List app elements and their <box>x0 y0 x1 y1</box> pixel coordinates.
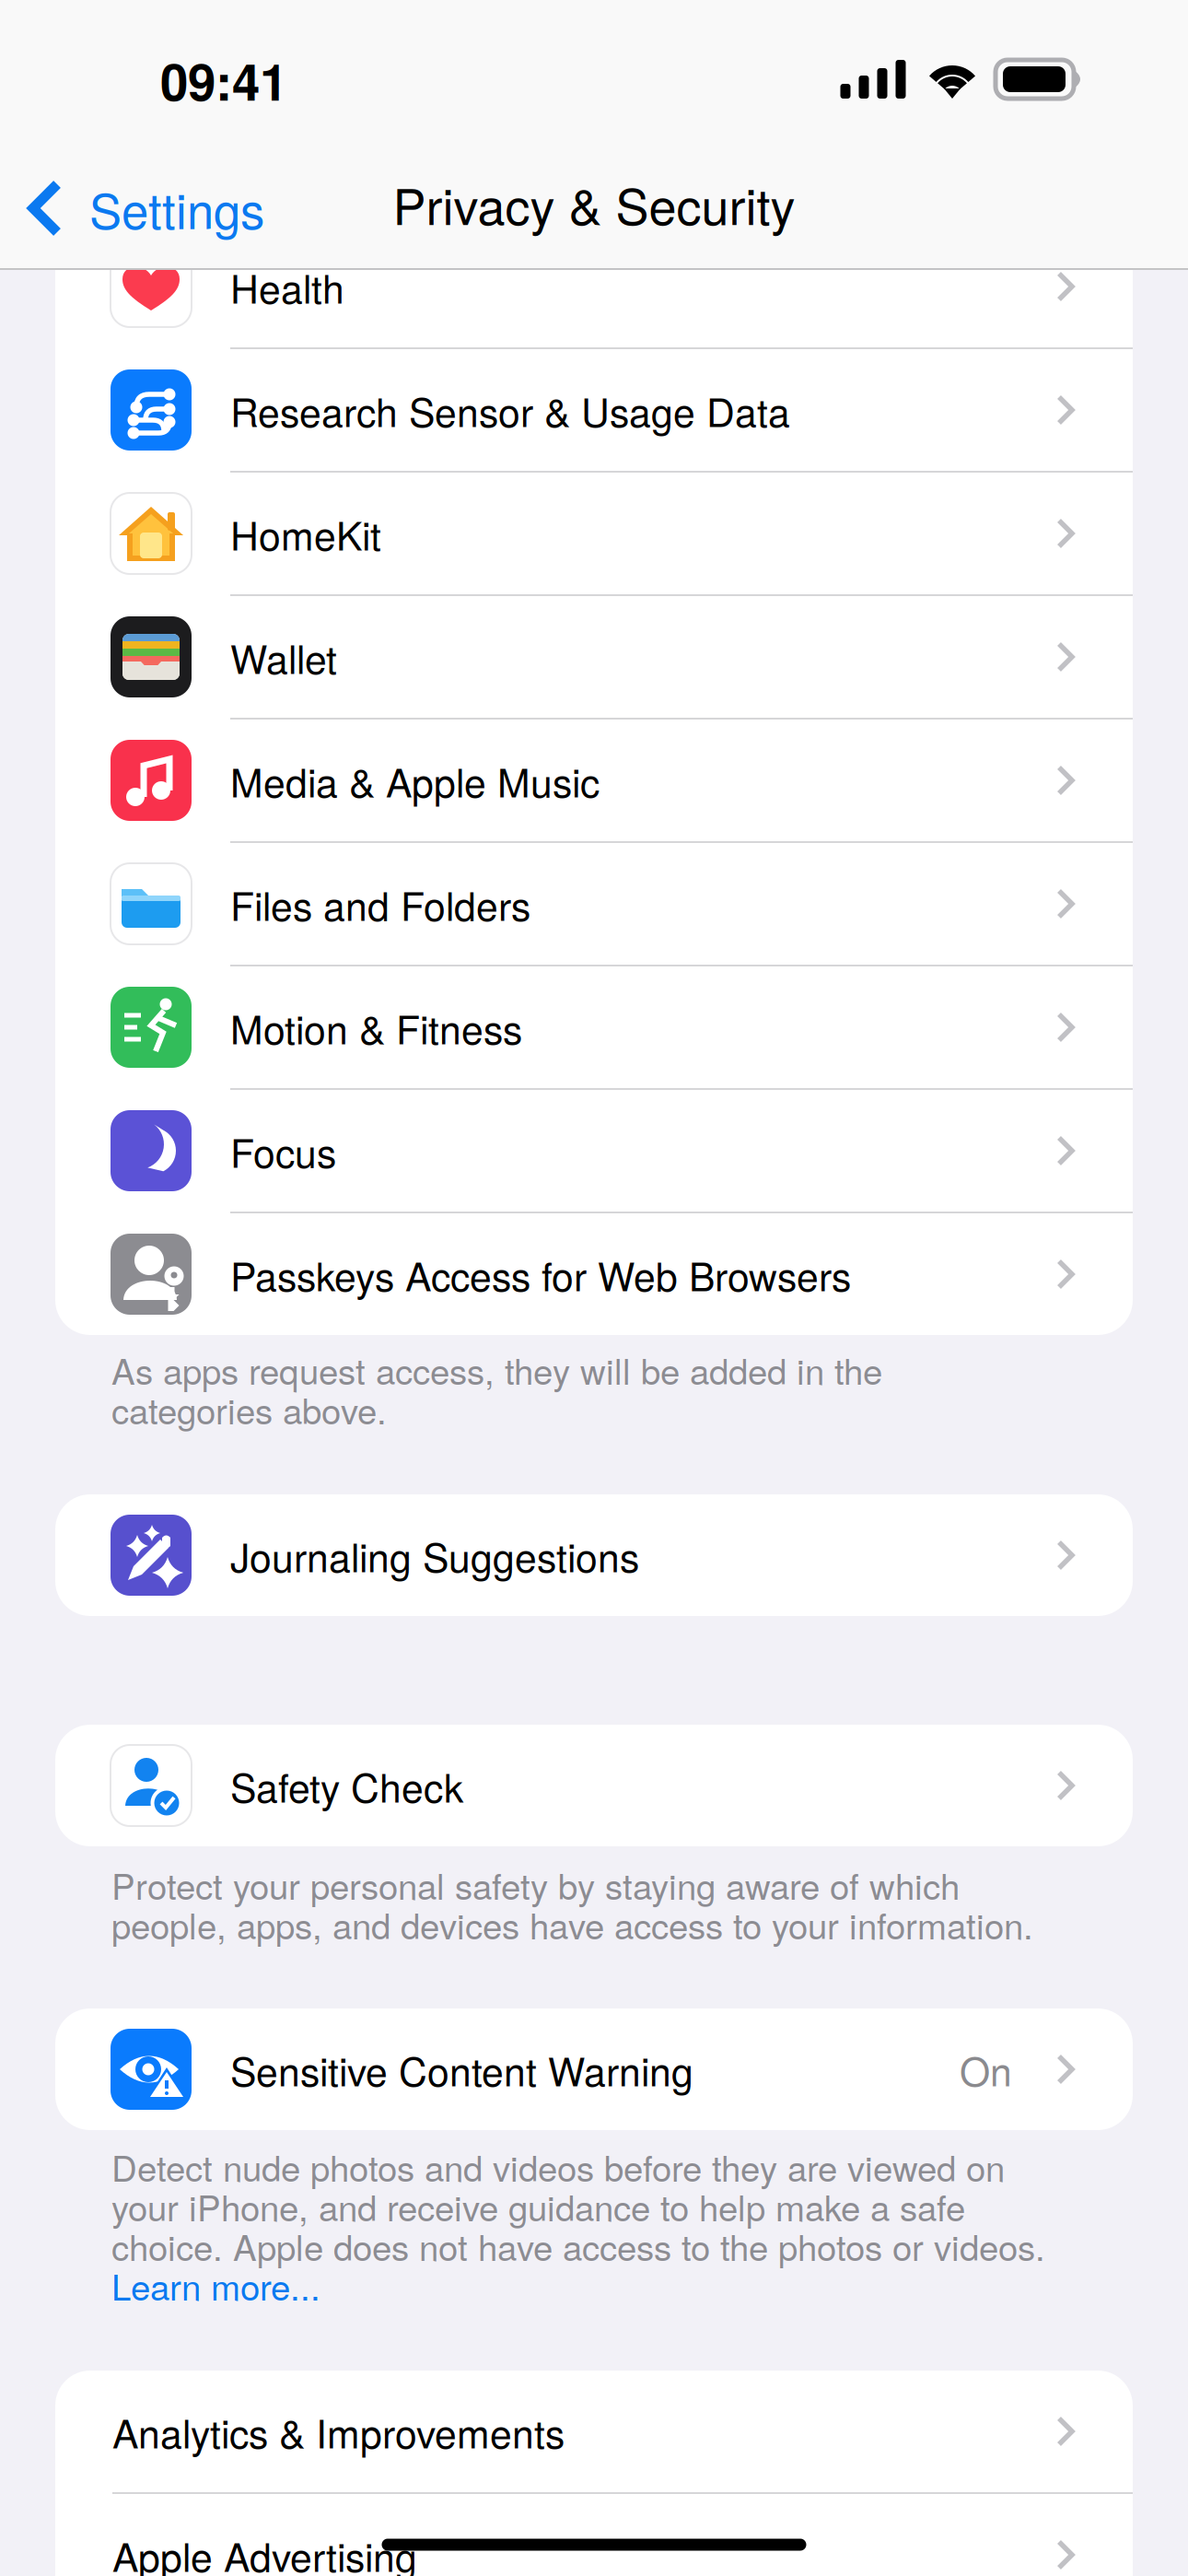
staticText: Focus <box>230 1123 336 1179</box>
button[interactable]: Health <box>55 226 1133 347</box>
staticText: Journaling Suggestions <box>230 1527 639 1583</box>
button[interactable]: Passkeys Access for Web Browsers <box>55 1213 1133 1335</box>
staticText: Research Sensor & Usage Data <box>230 382 790 438</box>
button[interactable]: Analytics & Improvements <box>55 2371 1133 2492</box>
staticText: Analytics & Improvements <box>112 2403 565 2460</box>
staticText: Media & Apple Music <box>230 752 600 809</box>
staticText: Health <box>230 258 344 315</box>
staticText: Learn more... <box>111 2260 320 2311</box>
button[interactable]: Media & Apple Music <box>55 720 1133 841</box>
staticText: Settings <box>89 173 264 243</box>
staticText: choice. Apple does not have access to th… <box>111 2220 1045 2271</box>
staticText: Safety Check <box>230 1757 463 1814</box>
button[interactable]: Safety Check <box>55 1725 1133 1846</box>
staticText: Wallet <box>230 629 337 685</box>
button[interactable]: Settings <box>0 158 379 259</box>
button[interactable]: Focus <box>55 1090 1133 1212</box>
button[interactable]: Learn more... <box>111 2266 1088 2305</box>
staticText: your iPhone, and receive guidance to hel… <box>111 2181 965 2231</box>
staticText: Privacy & Security <box>393 168 795 239</box>
staticText: Passkeys Access for Web Browsers <box>230 1246 851 1302</box>
button[interactable]: Journaling Suggestions <box>55 1494 1133 1616</box>
button[interactable]: HomeKit <box>55 473 1133 594</box>
staticText: Sensitive Content Warning <box>230 2041 693 2097</box>
button[interactable]: Sensitive Content Warning <box>55 2008 1133 2130</box>
staticText: Detect nude photos and videos before the… <box>111 2141 1005 2192</box>
button[interactable]: Files and Folders <box>55 843 1133 965</box>
button[interactable]: Motion & Fitness <box>55 966 1133 1088</box>
button[interactable]: Research Sensor & Usage Data <box>55 349 1133 471</box>
staticText: On <box>960 2041 1012 2097</box>
staticText: As apps request access, they will be add… <box>111 1344 882 1395</box>
staticText: Files and Folders <box>230 876 530 932</box>
staticText: Protect your personal safety by staying … <box>111 1859 960 1910</box>
staticText: 09:41 <box>160 44 287 116</box>
staticText: categories above. <box>111 1384 387 1434</box>
button[interactable]: Wallet <box>55 596 1133 718</box>
staticText: people, apps, and devices have access to… <box>111 1899 1033 1950</box>
button[interactable]: Apple Advertising <box>55 2494 1133 2576</box>
staticText: Apple Advertising <box>112 2527 417 2576</box>
staticText: HomeKit <box>230 505 381 562</box>
staticText: Motion & Fitness <box>230 999 522 1055</box>
